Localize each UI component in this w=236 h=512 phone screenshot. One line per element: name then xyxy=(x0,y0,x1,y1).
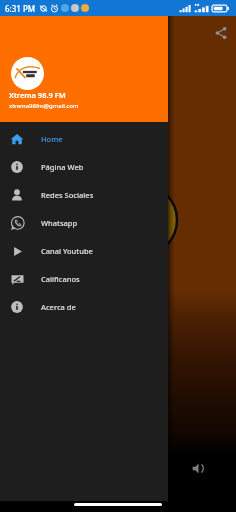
staticText: 6:31 PM xyxy=(5,3,36,14)
button[interactable]: Canal Youtube xyxy=(0,237,168,265)
staticText: Home xyxy=(41,134,63,144)
staticText: Canal Youtube xyxy=(41,246,93,256)
button[interactable]: Acerca de xyxy=(0,293,168,321)
staticText: Redes Sociales xyxy=(41,190,94,200)
button[interactable]: Calificanos xyxy=(0,265,168,293)
staticText: Xtrema 98.9 FM xyxy=(9,90,66,100)
button[interactable]: Home xyxy=(0,125,168,153)
button[interactable]: Volume xyxy=(192,462,205,475)
staticText: Página Web xyxy=(41,162,84,172)
button[interactable]: Home gesture xyxy=(74,503,162,506)
staticText: xtrema98fm@gmail.com xyxy=(9,102,79,110)
staticText: Calificanos xyxy=(41,274,80,284)
button[interactable]: Share xyxy=(214,26,228,40)
staticText: Whatsapp xyxy=(41,218,78,228)
button[interactable]: Redes Sociales xyxy=(0,181,168,209)
button[interactable]: Página Web xyxy=(0,153,168,181)
button[interactable]: Whatsapp xyxy=(0,209,168,237)
staticText: Acerca de xyxy=(41,302,76,312)
